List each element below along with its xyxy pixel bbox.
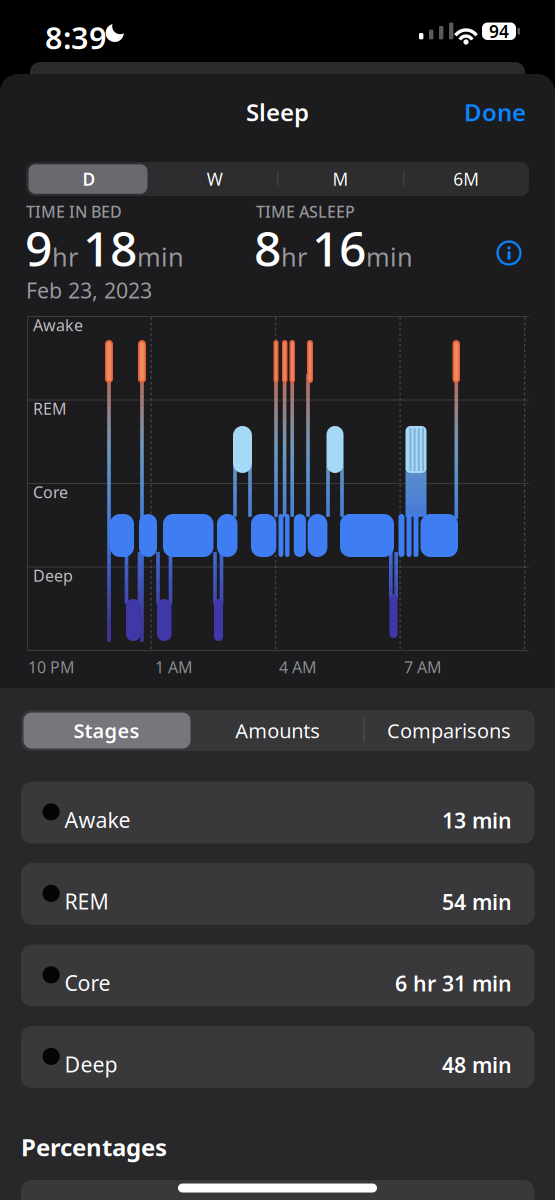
staticText: 18 xyxy=(83,216,137,280)
staticText: Comparisons xyxy=(387,717,511,744)
staticText: 16 xyxy=(312,216,366,280)
staticText: hr xyxy=(281,240,307,273)
staticText: Stages xyxy=(73,717,139,744)
staticText: Feb 23, 2023 xyxy=(26,276,152,304)
staticText: Percentages xyxy=(21,1131,167,1163)
staticText: Awake xyxy=(64,805,130,834)
staticText xyxy=(307,245,312,272)
staticText: min xyxy=(366,240,413,273)
staticText: Core xyxy=(64,968,110,997)
staticText: 94 xyxy=(489,20,509,43)
staticText: Core xyxy=(33,481,68,503)
button[interactable]: D xyxy=(26,162,152,196)
staticText: TIME ASLEEP xyxy=(256,201,355,222)
button[interactable]: W xyxy=(152,162,278,196)
staticText: TIME IN BED xyxy=(26,201,122,222)
staticText: M xyxy=(332,167,348,190)
staticText: 10 PM xyxy=(28,656,75,678)
staticText: Awake xyxy=(33,314,83,336)
staticText: D xyxy=(82,167,95,190)
staticText: 6M xyxy=(453,167,479,190)
staticText: 8:39 xyxy=(45,17,107,58)
staticText: REM xyxy=(33,398,67,419)
staticText: 13 min xyxy=(442,806,512,834)
staticText: 8 xyxy=(254,216,281,280)
staticText: Done xyxy=(464,96,526,128)
staticText: 6 hr 31 min xyxy=(395,969,512,997)
staticText: Sleep xyxy=(246,96,309,128)
button[interactable]: More information xyxy=(497,241,520,264)
staticText: REM xyxy=(64,887,108,915)
button[interactable]: Amounts xyxy=(192,710,363,751)
staticText: hr xyxy=(52,240,78,273)
button[interactable]: M xyxy=(277,162,403,196)
staticText: Amounts xyxy=(235,717,320,744)
staticText: Deep xyxy=(33,565,73,586)
staticText: min xyxy=(137,240,184,273)
staticText: 1 AM xyxy=(155,656,193,678)
button[interactable]: 6M xyxy=(403,162,529,196)
staticText: 9 xyxy=(25,216,52,280)
staticText: 4 AM xyxy=(279,656,317,678)
staticText xyxy=(78,245,83,272)
staticText: 48 min xyxy=(442,1050,512,1079)
staticText: W xyxy=(207,167,223,190)
button[interactable]: Comparisons xyxy=(363,710,534,751)
button[interactable]: Done xyxy=(458,96,532,128)
staticText: 54 min xyxy=(442,887,512,916)
staticText: Deep xyxy=(64,1050,117,1078)
button[interactable]: Stages xyxy=(21,710,192,751)
staticText: 7 AM xyxy=(404,656,442,678)
